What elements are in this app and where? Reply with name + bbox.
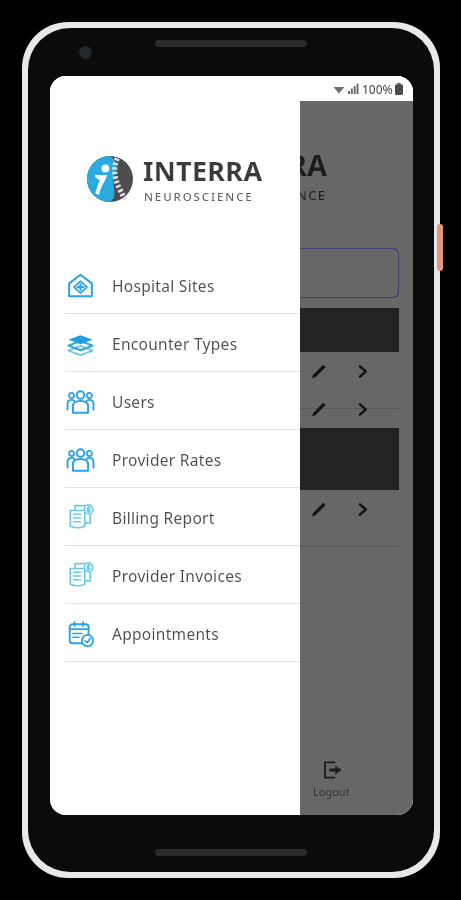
staticText: 100% [362,81,393,97]
staticText: ENCE [288,186,327,204]
button[interactable]: Hospital Sites [50,256,300,314]
button[interactable]: Billing Report [50,488,300,546]
staticText: Provider Invoices [112,565,242,586]
button[interactable]: Appointments [50,604,300,662]
staticText: Encounter Types [112,333,238,354]
staticText: Appointments [112,623,219,644]
staticText: Billing Report [112,507,215,528]
button[interactable]: Provider Invoices [50,546,300,604]
staticText: INTERRA [143,152,263,189]
staticText: Users [112,391,155,412]
button[interactable] [280,428,399,490]
staticText: Logout [313,784,350,799]
button[interactable]: Users [50,372,300,430]
button[interactable]: t [280,248,399,298]
staticText: Provider Rates [112,449,222,470]
staticText: Hospital Sites [112,275,215,296]
staticText: RA [288,145,328,184]
button[interactable] [280,308,399,352]
staticText: NEUROSCIENCE [144,189,254,205]
button[interactable]: Logout [50,743,413,815]
button[interactable]: Encounter Types [50,314,300,372]
button[interactable]: 1 [280,490,399,528]
button[interactable]: 8 [280,352,399,390]
staticText: 8 [280,362,288,380]
button[interactable]: Provider Rates [50,430,300,488]
button[interactable]: 2 [280,390,399,428]
